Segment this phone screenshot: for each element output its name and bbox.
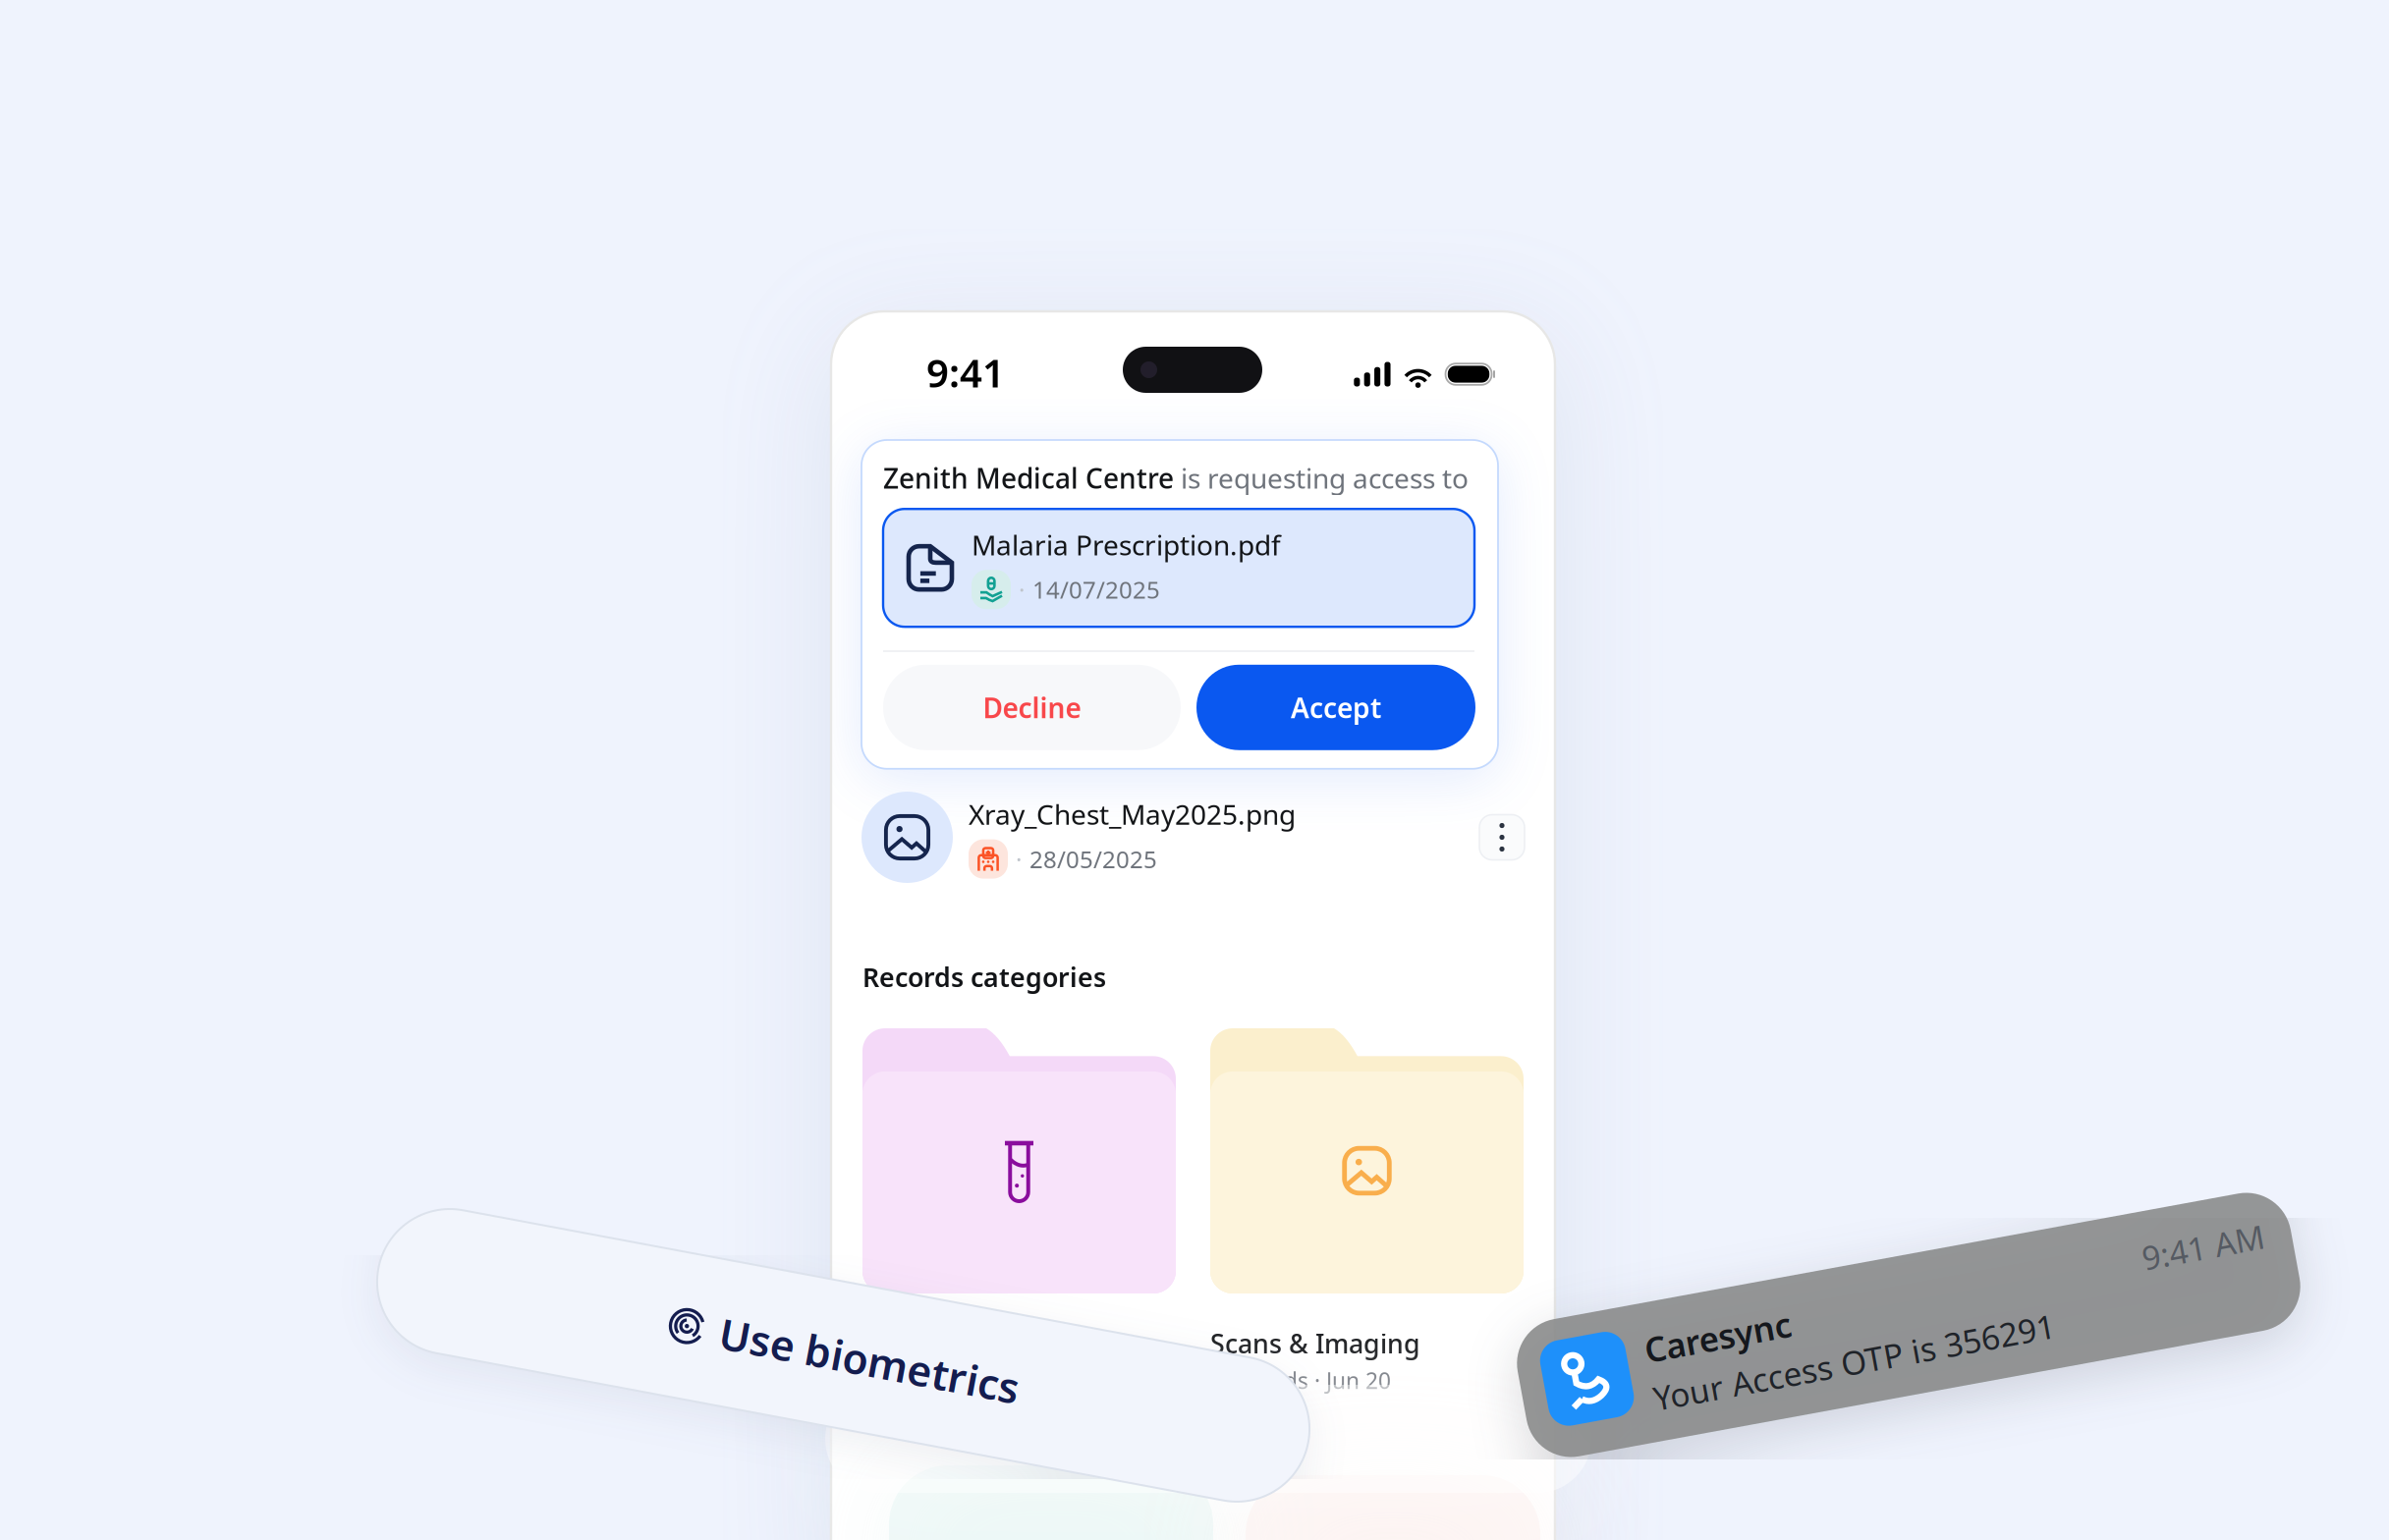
button[interactable]: Accept: [1196, 665, 1475, 750]
staticText: ·: [1016, 843, 1022, 875]
staticText: Malaria Prescription.pdf: [972, 527, 1281, 563]
staticText: Caresync: [1644, 1280, 1793, 1325]
staticText: is requesting access to: [1174, 460, 1469, 496]
button[interactable]: Use biometrics: [370, 1283, 1316, 1428]
staticText: Lab Results: [862, 1326, 1005, 1361]
staticText: Xray_Chest_May2025.png: [969, 796, 1296, 832]
staticText: Records categories: [862, 960, 1106, 994]
staticText: 28/05/2025: [1029, 843, 1157, 875]
staticText: ·: [1019, 574, 1025, 605]
button[interactable]: Lab Results: [862, 1028, 1176, 1395]
staticText: Use biometrics: [718, 1328, 1022, 1383]
staticText: Scans & Imaging: [1210, 1326, 1420, 1361]
button[interactable]: Caresync: [1516, 1255, 2302, 1395]
staticText: 8 records · Jul 14: [862, 1366, 1035, 1395]
staticText: Your Access OTP is 356291: [1644, 1330, 2052, 1373]
staticText: Accept: [1291, 689, 1381, 726]
button[interactable]: Decline: [883, 665, 1181, 750]
staticText: Zenith Medical Centre: [883, 460, 1174, 496]
staticText: 9:41: [926, 346, 1005, 398]
staticText: 5 records · Jun 20: [1210, 1366, 1391, 1395]
staticText: 14/07/2025: [1032, 574, 1160, 605]
button[interactable]: More options: [1479, 815, 1525, 860]
staticText: Decline: [983, 689, 1081, 726]
button[interactable]: Scans & Imaging: [1210, 1028, 1524, 1395]
